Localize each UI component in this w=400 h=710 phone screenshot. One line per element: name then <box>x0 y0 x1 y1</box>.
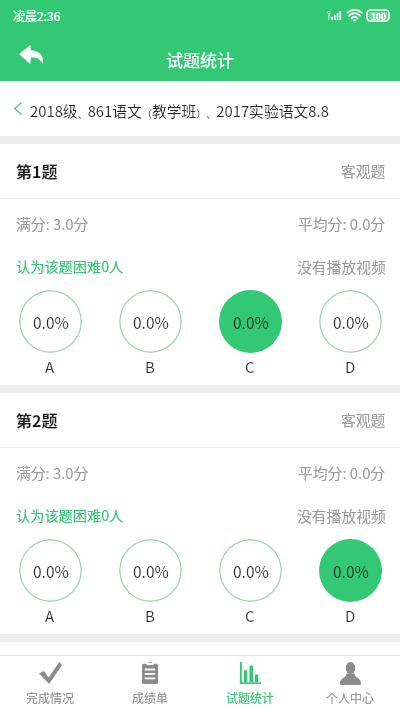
staticText: 0.0% <box>333 311 369 333</box>
staticText: A <box>45 605 55 627</box>
staticText: 客观题 <box>341 409 386 430</box>
staticText: B <box>145 605 155 627</box>
staticText: 试题统计 <box>166 47 234 72</box>
staticText: 100 <box>371 10 387 21</box>
staticText: 没有播放视频 <box>297 256 386 277</box>
staticText: 完成情况 <box>26 689 75 706</box>
button[interactable]: 0.0% <box>300 290 400 378</box>
button[interactable]: 0.0% <box>100 290 200 378</box>
staticText: 成绩单 <box>132 689 169 706</box>
staticText: 试题统计 <box>226 689 275 706</box>
staticText: 0.0% <box>333 560 369 582</box>
staticText: B <box>145 356 155 378</box>
button[interactable]: 个人中心 <box>300 656 400 710</box>
staticText: 0.0% <box>33 560 69 582</box>
button[interactable]: 2018级、861语文（教学班）、2017实验语文8.8 <box>0 81 400 136</box>
button[interactable]: Back <box>9 32 53 76</box>
staticText: 0.0% <box>233 311 269 333</box>
staticText: 第2题 <box>16 408 58 431</box>
button[interactable]: 0.0% <box>200 290 300 378</box>
staticText: 没有播放视频 <box>297 505 386 526</box>
staticText: 平均分: 0.0分 <box>298 213 386 234</box>
staticText: 0.0% <box>133 311 169 333</box>
staticText: D <box>345 605 356 627</box>
button[interactable]: 0.0% <box>0 539 100 627</box>
button[interactable]: 试题统计 <box>200 656 300 710</box>
staticText: 0.0% <box>33 311 69 333</box>
staticText: 0.0% <box>233 560 269 582</box>
staticText: 个人中心 <box>326 689 375 706</box>
button[interactable]: 0.0% <box>300 539 400 627</box>
staticText: A <box>45 356 55 378</box>
staticText: 满分: 3.0分 <box>16 462 89 483</box>
staticText: 第1题 <box>16 159 58 182</box>
staticText: 0.0% <box>133 560 169 582</box>
staticText: 认为该题困难0人 <box>16 256 124 277</box>
staticText: 满分: 3.0分 <box>16 213 89 234</box>
button[interactable]: 0.0% <box>100 539 200 627</box>
staticText: 2018级、861语文（教学班）、2017实验语文8.8 <box>30 100 329 121</box>
button[interactable]: 0.0% <box>200 539 300 627</box>
staticText: C <box>245 605 255 627</box>
staticText: 平均分: 0.0分 <box>298 462 386 483</box>
button[interactable]: 成绩单 <box>100 656 200 710</box>
button[interactable]: 0.0% <box>0 290 100 378</box>
button[interactable]: 完成情况 <box>0 656 100 710</box>
staticText: 凌晨2:36 <box>13 7 61 24</box>
staticText: 认为该题困难0人 <box>16 505 124 526</box>
staticText: D <box>345 356 356 378</box>
staticText: 客观题 <box>341 160 386 181</box>
staticText: C <box>245 356 255 378</box>
